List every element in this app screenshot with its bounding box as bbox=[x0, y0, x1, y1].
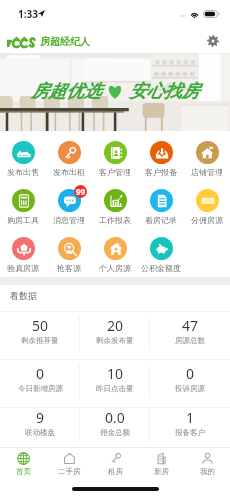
staticText: 客户管理 bbox=[99, 167, 131, 177]
button[interactable]: 店铺管理 bbox=[184, 141, 230, 177]
staticText: 验真房源 bbox=[7, 263, 39, 273]
button[interactable]: 10 bbox=[80, 360, 150, 407]
button[interactable]: 公积金额度 bbox=[138, 237, 184, 273]
button[interactable]: 0.0 bbox=[80, 408, 150, 447]
staticText: 1:33 bbox=[18, 7, 38, 21]
staticText: 昨日点击量 bbox=[96, 384, 134, 393]
button[interactable]: 0 bbox=[0, 360, 80, 407]
staticText: 抢客源 bbox=[57, 263, 81, 273]
staticText: 0 bbox=[186, 364, 195, 383]
staticText: 佣金总额 bbox=[100, 428, 130, 437]
staticText: 剩余推荐量 bbox=[21, 336, 59, 345]
staticText: 联动楼盘 bbox=[25, 428, 55, 437]
button[interactable]: 工作报表 bbox=[92, 189, 138, 225]
button[interactable]: 99 bbox=[46, 189, 92, 225]
button[interactable]: 验真房源 bbox=[0, 237, 46, 273]
button[interactable]: Promotion banner bbox=[0, 53, 230, 131]
button[interactable]: 50 bbox=[0, 312, 80, 359]
staticText: 房超优选 bbox=[31, 80, 101, 102]
staticText: 工作报表 bbox=[99, 215, 131, 225]
staticText: 47 bbox=[182, 316, 199, 335]
button[interactable]: Settings bbox=[203, 31, 223, 51]
staticText: 剩余发布量 bbox=[96, 336, 134, 345]
button[interactable]: 分佣房源 bbox=[184, 189, 230, 225]
staticText: 新房 bbox=[154, 467, 169, 476]
staticText: 报备客户 bbox=[175, 428, 205, 437]
button[interactable]: 0 bbox=[150, 360, 230, 407]
staticText: 发布出租 bbox=[53, 167, 85, 177]
staticText: 首页 bbox=[16, 467, 31, 476]
button[interactable]: 抢客源 bbox=[46, 237, 92, 273]
staticText: 二手房 bbox=[58, 467, 81, 476]
staticText: 分佣房源 bbox=[191, 215, 223, 225]
button[interactable]: 二手房 bbox=[46, 448, 92, 481]
staticText: 公积金额度 bbox=[141, 263, 181, 273]
button[interactable]: 1 bbox=[150, 408, 230, 447]
staticText: 50 bbox=[32, 316, 49, 335]
staticText: 99 bbox=[76, 186, 86, 197]
button[interactable]: 个人房源 bbox=[92, 237, 138, 273]
staticText: 1 bbox=[186, 408, 195, 427]
button[interactable]: 我的 bbox=[184, 448, 230, 481]
button[interactable]: 9 bbox=[0, 408, 80, 447]
button[interactable]: 购房工具 bbox=[0, 189, 46, 225]
button[interactable]: 发布出租 bbox=[46, 141, 92, 177]
button[interactable]: 发布出售 bbox=[0, 141, 46, 177]
button[interactable]: 客户报备 bbox=[138, 141, 184, 177]
staticText: 投诉房源 bbox=[175, 384, 205, 393]
staticText: 购房工具 bbox=[7, 215, 39, 225]
staticText: 租房 bbox=[108, 467, 123, 476]
button[interactable]: 客户管理 bbox=[92, 141, 138, 177]
staticText: 个人房源 bbox=[99, 263, 131, 273]
staticText: 消息管理 bbox=[53, 215, 85, 225]
staticText: 房源总数 bbox=[175, 336, 205, 345]
staticText: 今日新增房源 bbox=[18, 384, 63, 393]
button[interactable]: 新房 bbox=[138, 448, 184, 481]
staticText: 20 bbox=[107, 316, 124, 335]
button[interactable]: 20 bbox=[80, 312, 150, 359]
staticText: 店铺管理 bbox=[191, 167, 223, 177]
button[interactable]: 首页 bbox=[0, 448, 46, 481]
button[interactable]: 看房记录 bbox=[138, 189, 184, 225]
button[interactable]: 47 bbox=[150, 312, 230, 359]
staticText: 安心找房 bbox=[129, 80, 199, 102]
staticText: 房超经纪人 bbox=[40, 35, 90, 48]
staticText: 0 bbox=[36, 364, 45, 383]
staticText: 我的 bbox=[200, 467, 215, 476]
staticText: 0.0 bbox=[105, 408, 125, 427]
staticText: 客户报备 bbox=[145, 167, 177, 177]
staticText: 10 bbox=[107, 364, 124, 383]
button[interactable]: 租房 bbox=[92, 448, 138, 481]
staticText: 9 bbox=[36, 408, 45, 427]
staticText: 看房记录 bbox=[145, 215, 177, 225]
staticText: 看数据 bbox=[10, 290, 37, 301]
staticText: 发布出售 bbox=[7, 167, 39, 177]
